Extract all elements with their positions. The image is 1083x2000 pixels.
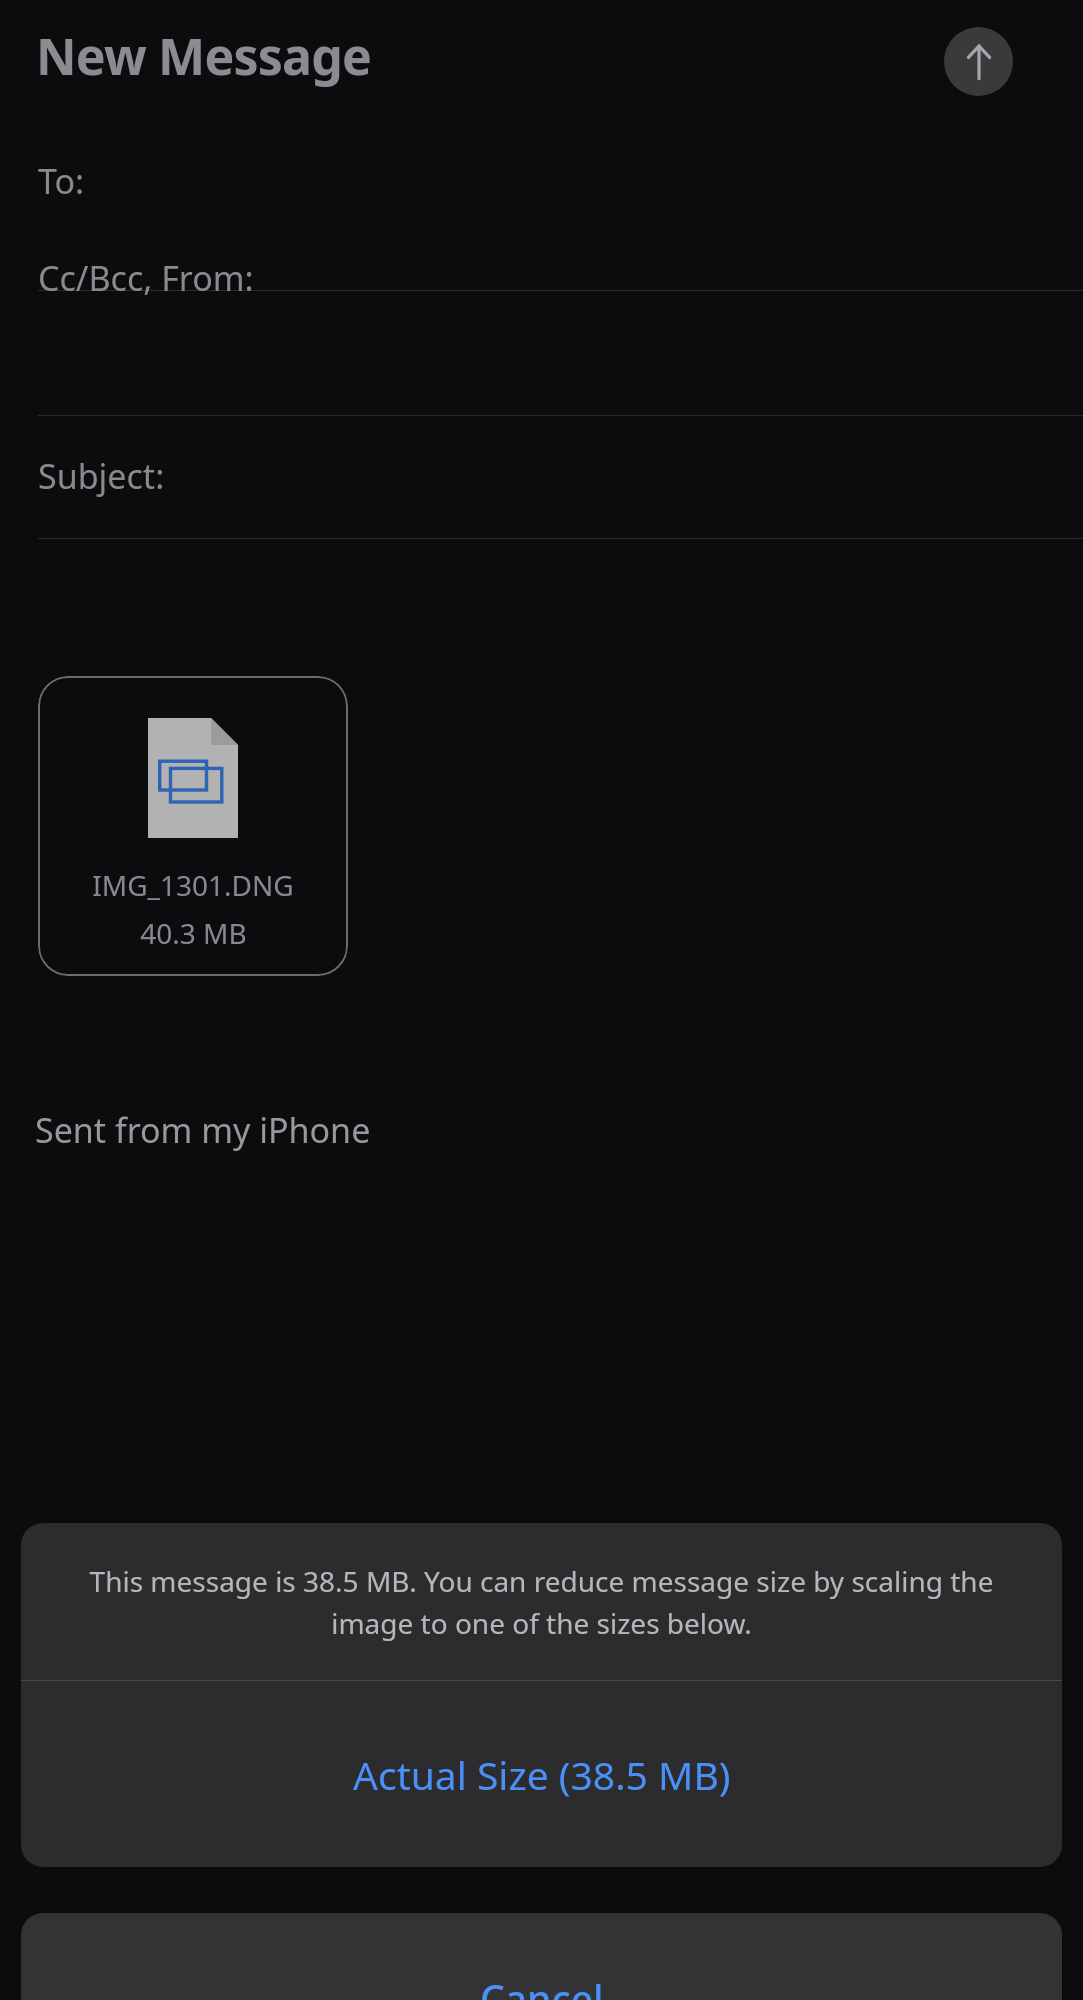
button[interactable]: Send: [944, 27, 1013, 96]
staticText: 40.3 MB: [140, 914, 247, 952]
staticText: Sent from my iPhone: [35, 1107, 371, 1153]
staticText: IMG_1301.DNG: [92, 866, 294, 904]
staticText: Cancel: [480, 1972, 604, 2000]
staticText: Actual Size (38.5 MB): [353, 1748, 731, 1801]
staticText: New Message: [36, 22, 372, 90]
staticText: This message is 38.5 MB. You can reduce …: [73, 1562, 1010, 1642]
button[interactable]: IMG_1301.DNG: [38, 676, 348, 976]
staticText: To:: [38, 158, 85, 204]
button[interactable]: Actual Size (38.5 MB): [21, 1681, 1062, 1867]
staticText: Subject:: [38, 453, 165, 499]
staticText: Cc/Bcc, From:: [38, 255, 254, 301]
button[interactable]: Cancel: [21, 1913, 1062, 2000]
